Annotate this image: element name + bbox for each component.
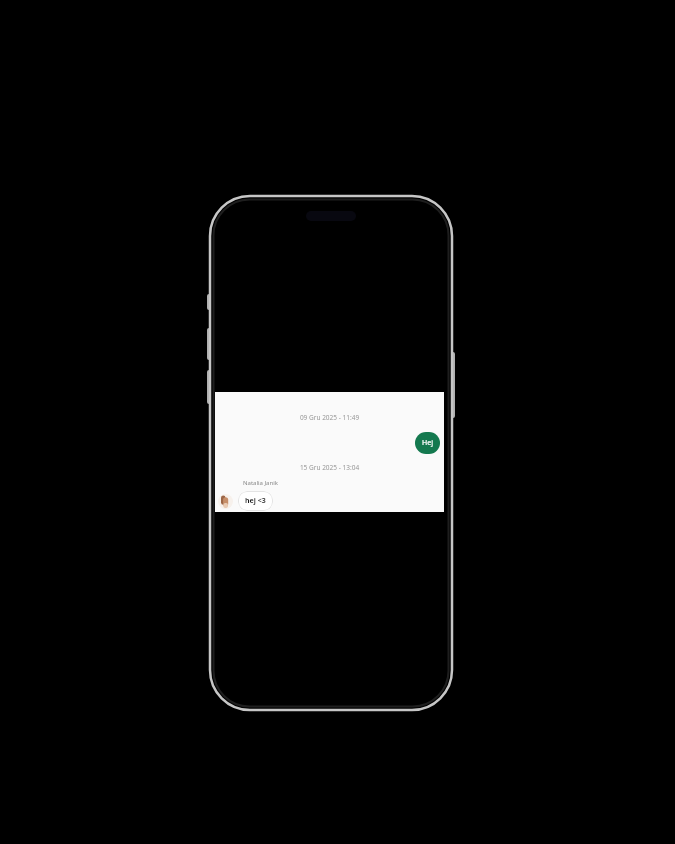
staticText: hej <3 [245, 496, 266, 506]
staticText: 09 Gru 2025 - 11:49 [215, 413, 444, 422]
button[interactable]: Natalia Janik profile photo [218, 494, 233, 509]
staticText: 15 Gru 2025 - 13:04 [215, 463, 444, 472]
staticText: Hej [422, 438, 433, 448]
button[interactable]: hej <3 [238, 491, 273, 511]
staticText: Natalia Janik [243, 479, 278, 487]
button[interactable]: Hej [415, 432, 440, 454]
